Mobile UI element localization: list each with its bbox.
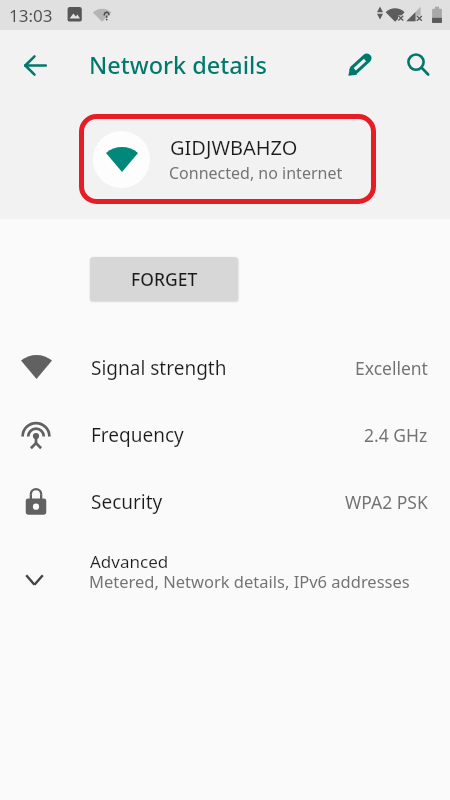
staticText: Signal strength xyxy=(91,355,227,381)
button[interactable]: Edit xyxy=(335,41,383,89)
button[interactable]: Advanced xyxy=(0,544,450,618)
button[interactable]: FORGET xyxy=(90,257,238,301)
staticText: Security xyxy=(91,489,163,515)
button[interactable]: Signal strength xyxy=(0,335,450,402)
button[interactable]: Search xyxy=(393,41,441,89)
staticText: Excellent xyxy=(355,356,428,380)
staticText: 13:03 xyxy=(9,4,53,27)
button[interactable]: Frequency xyxy=(0,402,450,469)
button[interactable]: Security xyxy=(0,469,450,536)
staticText: FORGET xyxy=(131,267,198,291)
staticText: Network details xyxy=(89,49,267,81)
staticText: WPA2 PSK xyxy=(345,490,428,514)
staticText: GIDJWBAHZO xyxy=(170,134,298,161)
staticText: Frequency xyxy=(91,422,184,448)
button[interactable]: GIDJWBAHZO xyxy=(79,114,376,204)
staticText: Connected, no internet xyxy=(169,162,343,184)
staticText: Advanced xyxy=(90,550,169,573)
staticText: 2.4 GHz xyxy=(364,423,428,447)
staticText: Metered, Network details, IPv6 addresses xyxy=(89,570,410,592)
button[interactable]: Navigate up xyxy=(11,41,59,89)
